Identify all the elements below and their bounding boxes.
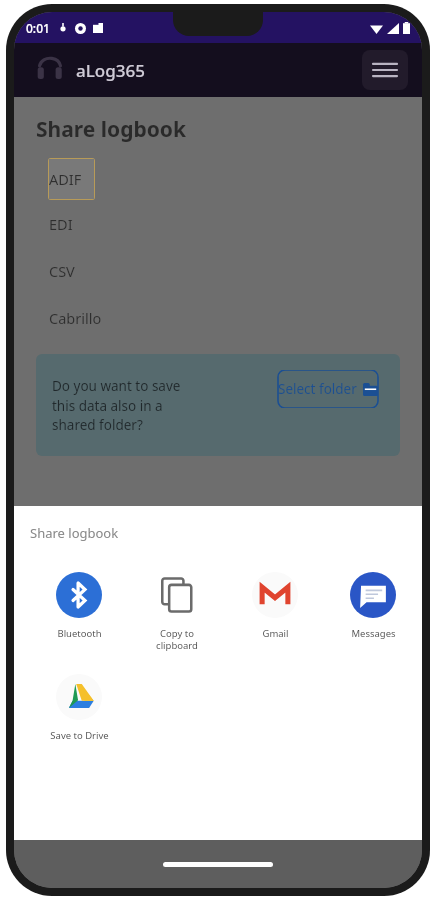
- button[interactable]: Home: [163, 862, 273, 867]
- staticText: Do you want to save this data also in a …: [52, 377, 181, 434]
- staticText: Save to Drive: [50, 729, 109, 742]
- staticText: aLog365: [76, 59, 145, 82]
- button[interactable]: Menu: [362, 50, 408, 90]
- button[interactable]: Gmail: [226, 568, 324, 644]
- staticText: Messages: [351, 627, 396, 640]
- staticText: ADIF: [49, 169, 82, 189]
- button[interactable]: Cabrillo: [49, 308, 102, 328]
- staticText: Share logbook: [30, 524, 119, 542]
- staticText: CSV: [49, 261, 75, 281]
- button[interactable]: CSV: [49, 261, 75, 281]
- button[interactable]: Messages: [324, 568, 422, 644]
- button[interactable]: ADIF: [48, 158, 95, 200]
- staticText: 0:01: [26, 20, 50, 36]
- staticText: Gmail: [262, 627, 289, 640]
- staticText: Bluetooth: [57, 627, 102, 640]
- staticText: Copy to clipboard: [156, 627, 198, 652]
- button[interactable]: Select folder: [266, 370, 390, 408]
- staticText: Select folder: [278, 380, 357, 398]
- staticText: Cabrillo: [49, 308, 102, 328]
- button[interactable]: Copy to clipboard: [128, 568, 226, 656]
- staticText: EDI: [49, 214, 73, 234]
- button[interactable]: Save to Drive: [30, 670, 128, 746]
- button[interactable]: Bluetooth: [30, 568, 128, 644]
- staticText: Share logbook: [36, 115, 186, 144]
- button[interactable]: EDI: [49, 214, 73, 234]
